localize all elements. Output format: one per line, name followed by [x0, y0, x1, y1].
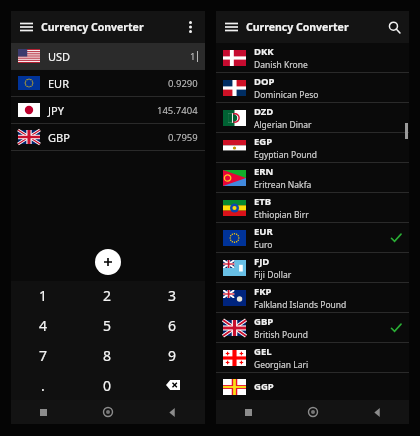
- button[interactable]: Recents: [11, 400, 75, 424]
- staticText: FJD: [254, 255, 270, 268]
- staticText: GBP: [48, 130, 70, 145]
- staticText: Algerian Dinar: [254, 119, 312, 131]
- button[interactable]: DZD: [216, 103, 409, 132]
- button[interactable]: FJD: [216, 253, 409, 282]
- staticText: 8: [103, 346, 112, 365]
- staticText: Danish Krone: [254, 59, 308, 71]
- staticText: Falkland Islands Pound: [254, 299, 347, 311]
- button[interactable]: ERN: [216, 163, 409, 192]
- button[interactable]: More options: [175, 12, 205, 42]
- staticText: 1: [39, 286, 48, 305]
- button[interactable]: GBP: [216, 313, 409, 342]
- staticText: 1: [190, 50, 196, 63]
- button[interactable]: 3: [140, 281, 205, 310]
- staticText: 9: [168, 346, 177, 365]
- staticText: 7: [39, 346, 48, 365]
- staticText: 6: [168, 316, 177, 335]
- button[interactable]: EUR: [11, 70, 205, 96]
- staticText: Eritrean Nakfa: [254, 179, 312, 191]
- button[interactable]: Backspace: [140, 370, 205, 400]
- button[interactable]: 0: [75, 370, 140, 400]
- button[interactable]: Back: [140, 400, 205, 424]
- button[interactable]: DOP: [216, 73, 409, 102]
- staticText: DKK: [254, 45, 274, 58]
- button[interactable]: Recents: [216, 400, 281, 424]
- staticText: British Pound: [254, 329, 309, 341]
- staticText: GGP: [254, 380, 274, 393]
- button[interactable]: .: [11, 370, 75, 400]
- staticText: EGP: [254, 135, 273, 148]
- button[interactable]: 7: [11, 340, 75, 370]
- staticText: 2: [103, 286, 112, 305]
- staticText: GBP: [254, 315, 274, 328]
- button[interactable]: ETB: [216, 193, 409, 222]
- staticText: Georgian Lari: [254, 359, 309, 371]
- button[interactable]: Search: [379, 12, 409, 42]
- button[interactable]: GBP: [11, 124, 205, 150]
- staticText: ERN: [254, 165, 274, 178]
- button[interactable]: 6: [140, 310, 205, 340]
- staticText: Currency Converter: [246, 20, 349, 34]
- button[interactable]: DKK: [216, 43, 409, 72]
- staticText: DZD: [254, 105, 274, 118]
- button[interactable]: USD: [11, 43, 205, 69]
- staticText: Dominican Peso: [254, 89, 319, 101]
- button[interactable]: Add currency: [95, 249, 121, 275]
- staticText: 0.7959: [168, 131, 198, 144]
- button[interactable]: 8: [75, 340, 140, 370]
- staticText: 0: [103, 376, 112, 395]
- button[interactable]: 4: [11, 310, 75, 340]
- button[interactable]: JPY: [11, 97, 205, 123]
- staticText: 145.7404: [157, 104, 198, 117]
- staticText: JPY: [48, 103, 64, 118]
- button[interactable]: EGP: [216, 133, 409, 162]
- button[interactable]: EUR: [216, 223, 409, 252]
- button[interactable]: 5: [75, 310, 140, 340]
- staticText: 3: [168, 286, 177, 305]
- staticText: 4: [39, 316, 48, 335]
- button[interactable]: Home: [281, 400, 345, 424]
- staticText: EUR: [48, 76, 69, 91]
- button[interactable]: GEL: [216, 343, 409, 372]
- staticText: .: [41, 376, 45, 395]
- button[interactable]: Menu: [11, 12, 41, 42]
- button[interactable]: 9: [140, 340, 205, 370]
- staticText: ETB: [254, 195, 272, 208]
- staticText: Currency Converter: [41, 20, 144, 34]
- staticText: Euro: [254, 239, 273, 251]
- staticText: 5: [103, 316, 112, 335]
- staticText: DOP: [254, 75, 275, 88]
- staticText: Egyptian Pound: [254, 149, 318, 161]
- staticText: USD: [48, 49, 71, 64]
- staticText: 0.9290: [168, 77, 198, 90]
- button[interactable]: Home: [75, 400, 140, 424]
- button[interactable]: Menu: [216, 12, 246, 42]
- button[interactable]: 1: [11, 281, 75, 310]
- staticText: GEL: [254, 345, 272, 358]
- staticText: Fiji Dollar: [254, 269, 292, 281]
- staticText: FKP: [254, 285, 272, 298]
- button[interactable]: FKP: [216, 283, 409, 312]
- button[interactable]: GGP: [216, 373, 409, 400]
- button[interactable]: Back: [345, 400, 409, 424]
- staticText: EUR: [254, 225, 273, 238]
- staticText: Ethiopian Birr: [254, 209, 309, 221]
- button[interactable]: 2: [75, 281, 140, 310]
